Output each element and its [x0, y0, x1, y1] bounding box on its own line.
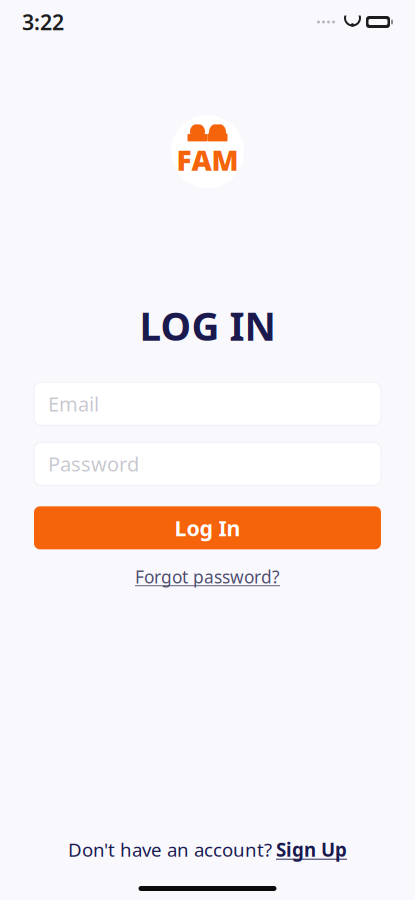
- button[interactable]: Log In: [34, 506, 381, 549]
- staticText: Forgot password?: [135, 565, 280, 588]
- button[interactable]: Forgot password?: [127, 562, 288, 591]
- staticText: Email: [48, 391, 99, 417]
- staticText: LOG IN: [139, 300, 275, 351]
- staticText: Password: [48, 451, 139, 477]
- staticText: FAM: [176, 141, 238, 179]
- staticText: 3:22: [22, 8, 64, 36]
- staticText: Don't have an account?: [68, 837, 272, 862]
- button[interactable]: Don't have an account?: [58, 831, 357, 868]
- staticText: Sign Up: [276, 837, 347, 862]
- staticText: Log In: [174, 514, 240, 542]
